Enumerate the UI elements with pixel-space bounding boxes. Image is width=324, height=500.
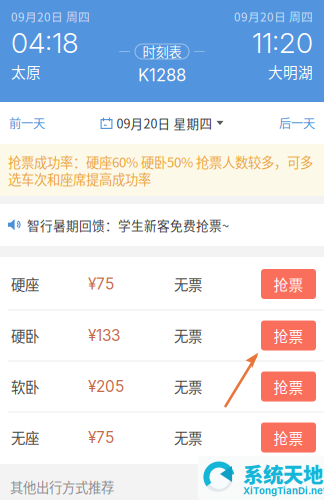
button[interactable]: 抢票: [261, 422, 316, 452]
staticText: 选车次和座席提高成功率: [8, 169, 151, 188]
staticText: 系统天地: [243, 459, 323, 488]
staticText: 硬卧: [11, 325, 39, 346]
staticText: 大明湖: [268, 61, 313, 82]
button[interactable]: 抢票: [261, 320, 316, 350]
staticText: 硬座: [11, 274, 39, 294]
staticText: 无座: [11, 427, 39, 448]
button[interactable]: 后一天: [225, 102, 324, 144]
staticText: 09月20日 周四: [11, 8, 90, 25]
staticText: 前一天: [9, 114, 45, 132]
staticText: K1288: [138, 65, 186, 85]
staticText: ¥205: [88, 377, 124, 396]
staticText: 抢票成功率：硬座60% 硬卧50% 抢票人数较多，可多: [8, 152, 313, 171]
staticText: XiTongTianDi.net: [243, 485, 324, 497]
staticText: 抢票: [273, 325, 303, 346]
staticText: 09月20日 周四: [234, 8, 313, 25]
staticText: ¥75: [88, 428, 114, 447]
staticText: 软卧: [11, 376, 39, 397]
button[interactable]: 智行暑期回馈：学生新客免费抢票~: [0, 204, 324, 246]
staticText: 抢票: [273, 273, 303, 295]
button[interactable]: 抢票: [261, 269, 316, 299]
staticText: 其他出行方式推荐: [10, 477, 114, 496]
staticText: 太原: [11, 61, 41, 82]
staticText: 时刻表: [142, 42, 181, 61]
staticText: 抢票: [273, 376, 303, 397]
staticText: 09月20日 星期四: [116, 114, 212, 132]
staticText: 无票: [174, 376, 202, 397]
staticText: 抢票: [273, 427, 303, 448]
button[interactable]: 前一天: [0, 102, 99, 144]
staticText: 后一天: [279, 114, 315, 132]
staticText: 04:18: [11, 26, 79, 60]
staticText: 无票: [174, 274, 202, 294]
staticText: ¥75: [88, 275, 114, 293]
staticText: 无票: [174, 427, 202, 448]
staticText: 无票: [174, 325, 202, 346]
staticText: 11:20: [252, 26, 313, 60]
button[interactable]: 抢票: [261, 371, 316, 401]
staticText: ¥133: [88, 326, 120, 345]
staticText: 智行暑期回馈：学生新客免费抢票~: [27, 216, 229, 234]
button[interactable]: 09月20日 星期四: [100, 102, 223, 144]
